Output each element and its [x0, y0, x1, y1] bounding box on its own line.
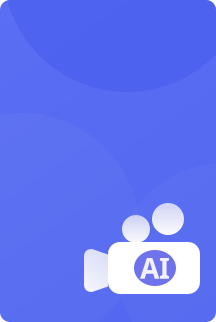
button[interactable]: Start AI video call: [0, 0, 216, 322]
staticText: AI: [140, 249, 170, 287]
